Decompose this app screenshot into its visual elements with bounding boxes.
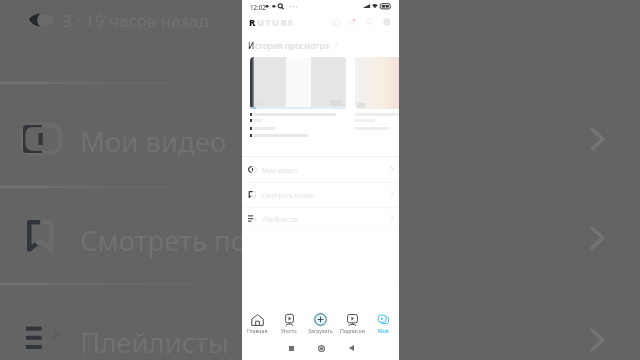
staticText: 12:02 — [250, 3, 266, 11]
button[interactable]: Загрузить — [305, 308, 336, 336]
staticText: стория просмотра — [255, 40, 330, 51]
button[interactable]: Recents — [276, 336, 306, 360]
staticText: Мои видео — [80, 123, 227, 160]
button[interactable]: Подписки — [337, 308, 368, 336]
staticText: Плейлисты — [262, 215, 299, 224]
staticText: Загрузить — [308, 327, 333, 334]
button[interactable]: Смотреть позже — [242, 182, 399, 206]
button[interactable]: Главная — [242, 308, 273, 336]
staticText: 3 · 19 часов назад — [62, 9, 209, 32]
button[interactable] — [355, 57, 399, 143]
staticText: Моё — [378, 327, 389, 334]
staticText: Плейлисты — [80, 324, 229, 360]
button[interactable]: Shorts — [273, 308, 304, 336]
staticText: Мои видео — [262, 166, 298, 175]
button[interactable] — [250, 57, 346, 143]
button[interactable]: Profile — [380, 15, 394, 29]
button[interactable]: Моё — [368, 308, 399, 336]
staticText: Подписки — [340, 327, 365, 334]
staticText: R — [249, 16, 257, 29]
button[interactable]: Notifications — [345, 15, 359, 29]
staticText: И — [248, 40, 255, 51]
button[interactable]: Home — [306, 336, 336, 360]
button[interactable]: Cast — [329, 15, 343, 29]
button[interactable]: Мои видео — [242, 157, 399, 181]
button[interactable]: Плейлисты — [242, 206, 399, 230]
staticText: Главная — [247, 327, 268, 334]
button[interactable]: Back — [336, 336, 366, 360]
staticText: Смотреть позже — [262, 191, 315, 200]
staticText: Shorts — [281, 327, 297, 334]
button[interactable]: Search — [363, 15, 377, 29]
staticText: UTUBE — [257, 16, 295, 29]
staticText: Смотреть позже — [80, 222, 296, 259]
